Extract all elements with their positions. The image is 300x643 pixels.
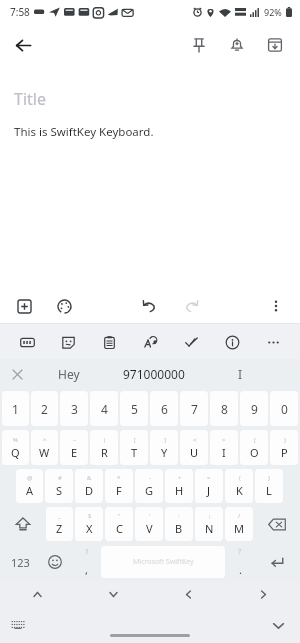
- button[interactable]: /: [225, 507, 253, 541]
- button[interactable]: +: [165, 469, 193, 503]
- button[interactable]: Add: [10, 292, 38, 320]
- button[interactable]: -: [135, 469, 163, 503]
- button[interactable]: 123: [1, 545, 39, 579]
- button[interactable]: Edit: [177, 328, 205, 356]
- button[interactable]: ~: [60, 430, 88, 465]
- staticText: !: [86, 547, 88, 557]
- staticText: ?: [238, 547, 242, 557]
- button[interactable]: *: [105, 469, 133, 503]
- staticText: D: [85, 483, 94, 498]
- button[interactable]: Shift: [1, 507, 45, 541]
- button[interactable]: :: [165, 507, 193, 541]
- button[interactable]: 8: [210, 391, 238, 426]
- button[interactable]: <: [180, 430, 208, 465]
- button[interactable]: #: [45, 469, 73, 503]
- staticText: F: [116, 483, 122, 498]
- button[interactable]: ?: [225, 545, 255, 579]
- button[interactable]: [: [120, 430, 148, 465]
- button[interactable]: Undo: [134, 292, 162, 320]
- button[interactable]: 3: [60, 391, 88, 426]
- button[interactable]: 0: [270, 391, 298, 426]
- button[interactable]: More options: [262, 292, 290, 320]
- staticText: L: [266, 483, 272, 498]
- staticText: ]: [164, 436, 166, 444]
- staticText: I: [222, 445, 226, 460]
- button[interactable]: |: [90, 430, 118, 465]
- button[interactable]: &: [75, 469, 103, 503]
- button[interactable]: 7: [180, 391, 208, 426]
- staticText: I: [238, 366, 243, 382]
- button[interactable]: Reminder: [222, 30, 252, 60]
- staticText: 0: [281, 401, 288, 417]
- staticText: 5: [131, 401, 138, 417]
- button[interactable]: Color palette: [50, 292, 78, 320]
- button[interactable]: ]: [150, 430, 178, 465]
- button[interactable]: Translate: [136, 328, 164, 356]
- button[interactable]: Redo: [178, 292, 206, 320]
- button[interactable]: Right: [250, 581, 276, 607]
- button[interactable]: 1: [2, 391, 29, 426]
- button[interactable]: ^: [31, 430, 58, 465]
- button[interactable]: (: [240, 430, 268, 465]
- staticText: S: [56, 483, 63, 498]
- button[interactable]: Info: [218, 328, 246, 356]
- staticText: 7:58: [10, 5, 30, 19]
- button[interactable]: Clipboard: [95, 328, 123, 356]
- button[interactable]: Left: [175, 581, 201, 607]
- button[interactable]: Space: [101, 546, 225, 578]
- staticText: C: [116, 521, 123, 536]
- button[interactable]: 6: [150, 391, 178, 426]
- staticText: |: [103, 436, 107, 444]
- button[interactable]: 971000000: [104, 359, 204, 389]
- staticText: >: [222, 436, 226, 444]
- button[interactable]: =: [195, 469, 223, 503]
- button[interactable]: Archive: [260, 30, 290, 60]
- button[interactable]: I: [210, 359, 270, 389]
- staticText: &: [87, 474, 92, 482]
- button[interactable]: !: [71, 545, 101, 579]
- staticText: H: [175, 483, 184, 498]
- button[interactable]: ": [105, 507, 133, 541]
- button[interactable]: Back: [6, 28, 40, 62]
- staticText: :: [178, 512, 180, 520]
- staticText: Z: [56, 521, 63, 536]
- button[interactable]: _: [46, 507, 73, 541]
- staticText: B: [175, 521, 183, 536]
- button[interactable]: %: [2, 430, 29, 465]
- button[interactable]: More: [259, 328, 287, 356]
- button[interactable]: ;: [195, 507, 223, 541]
- button[interactable]: 4: [90, 391, 118, 426]
- button[interactable]: Enter: [255, 545, 299, 579]
- button[interactable]: ': [135, 507, 163, 541]
- button[interactable]: 9: [240, 391, 268, 426]
- staticText: ): [284, 436, 286, 444]
- staticText: P: [281, 445, 288, 460]
- button[interactable]: Stickers: [54, 328, 82, 356]
- button[interactable]: ): [270, 430, 298, 465]
- button[interactable]: Down: [100, 581, 126, 607]
- button[interactable]: @: [16, 469, 43, 503]
- staticText: N: [205, 521, 214, 536]
- button[interactable]: Keyboard: [6, 613, 30, 637]
- staticText: 7: [191, 401, 198, 417]
- button[interactable]: 5: [120, 391, 148, 426]
- button[interactable]: ): [255, 469, 283, 503]
- staticText: W: [39, 445, 50, 460]
- button[interactable]: 2: [31, 391, 58, 426]
- button[interactable]: $: [75, 507, 103, 541]
- button[interactable]: GIF: [13, 328, 41, 356]
- button[interactable]: >: [210, 430, 238, 465]
- button[interactable]: Up: [24, 581, 50, 607]
- button[interactable]: (: [225, 469, 253, 503]
- staticText: =: [207, 474, 211, 482]
- button[interactable]: Emoji: [39, 545, 71, 579]
- staticText: 92%: [264, 6, 282, 18]
- button[interactable]: Close suggestions: [6, 363, 28, 385]
- staticText: O: [250, 445, 259, 460]
- staticText: @: [27, 474, 33, 482]
- button[interactable]: Pin: [184, 30, 214, 60]
- button[interactable]: Hey: [34, 359, 104, 389]
- button[interactable]: Hide keyboard: [266, 613, 290, 637]
- button[interactable]: Backspace: [254, 507, 299, 541]
- staticText: This is SwiftKey Keyboard.: [14, 124, 154, 140]
